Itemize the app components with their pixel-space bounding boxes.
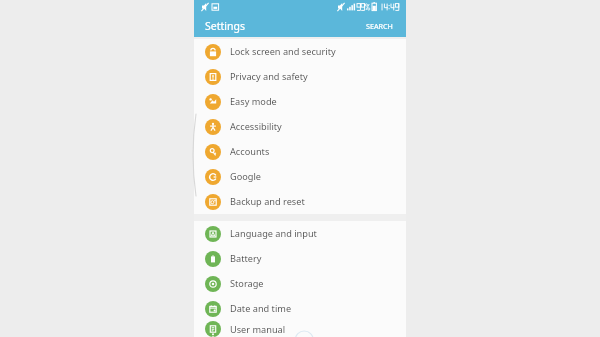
- button[interactable]: Backup and reset: [194, 189, 406, 214]
- button[interactable]: Accessibility: [194, 114, 406, 139]
- staticText: Battery: [230, 252, 262, 265]
- staticText: Privacy and safety: [230, 70, 308, 83]
- staticText: User manual: [230, 323, 286, 336]
- staticText: Storage: [230, 277, 264, 290]
- button[interactable]: SEARCH: [364, 18, 395, 34]
- button[interactable]: Language and input: [194, 221, 406, 246]
- staticText: Backup and reset: [230, 195, 305, 208]
- button[interactable]: Google: [194, 164, 406, 189]
- button[interactable]: Privacy and safety: [194, 64, 406, 89]
- button[interactable]: Battery: [194, 246, 406, 271]
- staticText: Lock screen and security: [230, 45, 336, 58]
- staticText: SEARCH: [366, 21, 393, 31]
- button[interactable]: Accounts: [194, 139, 406, 164]
- button[interactable]: Lock screen and security: [194, 39, 406, 64]
- button[interactable]: Easy mode: [194, 89, 406, 114]
- button[interactable]: Storage: [194, 271, 406, 296]
- staticText: Google: [230, 170, 262, 183]
- staticText: Language and input: [230, 227, 317, 240]
- staticText: Settings: [205, 19, 245, 33]
- staticText: Accessibility: [230, 120, 282, 133]
- button[interactable]: Date and time: [194, 296, 406, 321]
- button[interactable]: User manual: [194, 321, 406, 337]
- staticText: Date and time: [230, 302, 292, 315]
- staticText: Easy mode: [230, 95, 277, 108]
- button[interactable]: Settings: [205, 19, 364, 33]
- staticText: Accounts: [230, 145, 270, 158]
